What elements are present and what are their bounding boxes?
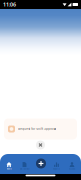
staticText: 11:06 [3, 1, 16, 8]
button[interactable]: Self Service [16, 159, 33, 172]
button[interactable]: Account [63, 159, 80, 172]
button[interactable]: Reports [48, 159, 65, 172]
staticText: Self Service [19, 168, 29, 170]
staticText: Account [68, 168, 75, 170]
button[interactable]: Request for Shift Approval [4, 118, 77, 139]
staticText: Home [6, 168, 11, 170]
staticText: Reports [53, 168, 60, 170]
button[interactable]: Add [36, 158, 46, 168]
staticText: Request for Shift Approval [18, 127, 56, 131]
button[interactable]: Dismiss [36, 140, 45, 149]
button[interactable]: Home [0, 159, 17, 172]
